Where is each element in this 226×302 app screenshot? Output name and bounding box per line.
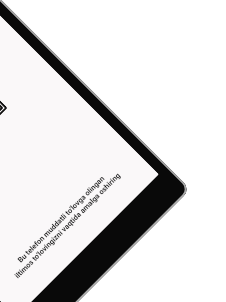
staticText: iltimos to'lovingizni vaqtida amalga osh… xyxy=(0,155,138,296)
staticText: Bu telefon muddatli to'lovga olingan xyxy=(0,149,131,290)
button[interactable]: Logo xyxy=(0,51,8,165)
